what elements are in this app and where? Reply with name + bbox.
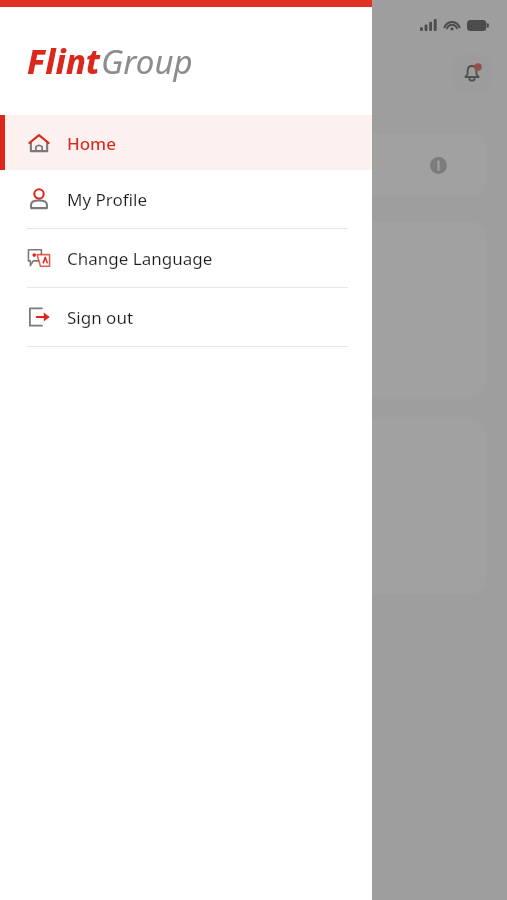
button[interactable]: Schedule a — [22, 419, 485, 594]
staticText: Group — [101, 39, 193, 84]
staticText: Home — [67, 132, 116, 155]
button[interactable]: Send a — [22, 222, 485, 397]
button[interactable]: Notifications — [453, 54, 491, 92]
staticText: Change Language — [67, 247, 213, 270]
staticText: My Profile — [67, 188, 147, 211]
staticText: Sign out — [67, 306, 134, 329]
button[interactable]: Home — [0, 115, 372, 170]
staticText: message — [48, 345, 124, 370]
button[interactable]: Sign out — [0, 288, 372, 346]
button[interactable] — [22, 134, 485, 196]
staticText: Flint — [27, 39, 101, 84]
staticText: Send a — [48, 320, 106, 345]
button[interactable]: My Profile — [0, 170, 372, 228]
button[interactable]: Change Language — [0, 229, 372, 287]
